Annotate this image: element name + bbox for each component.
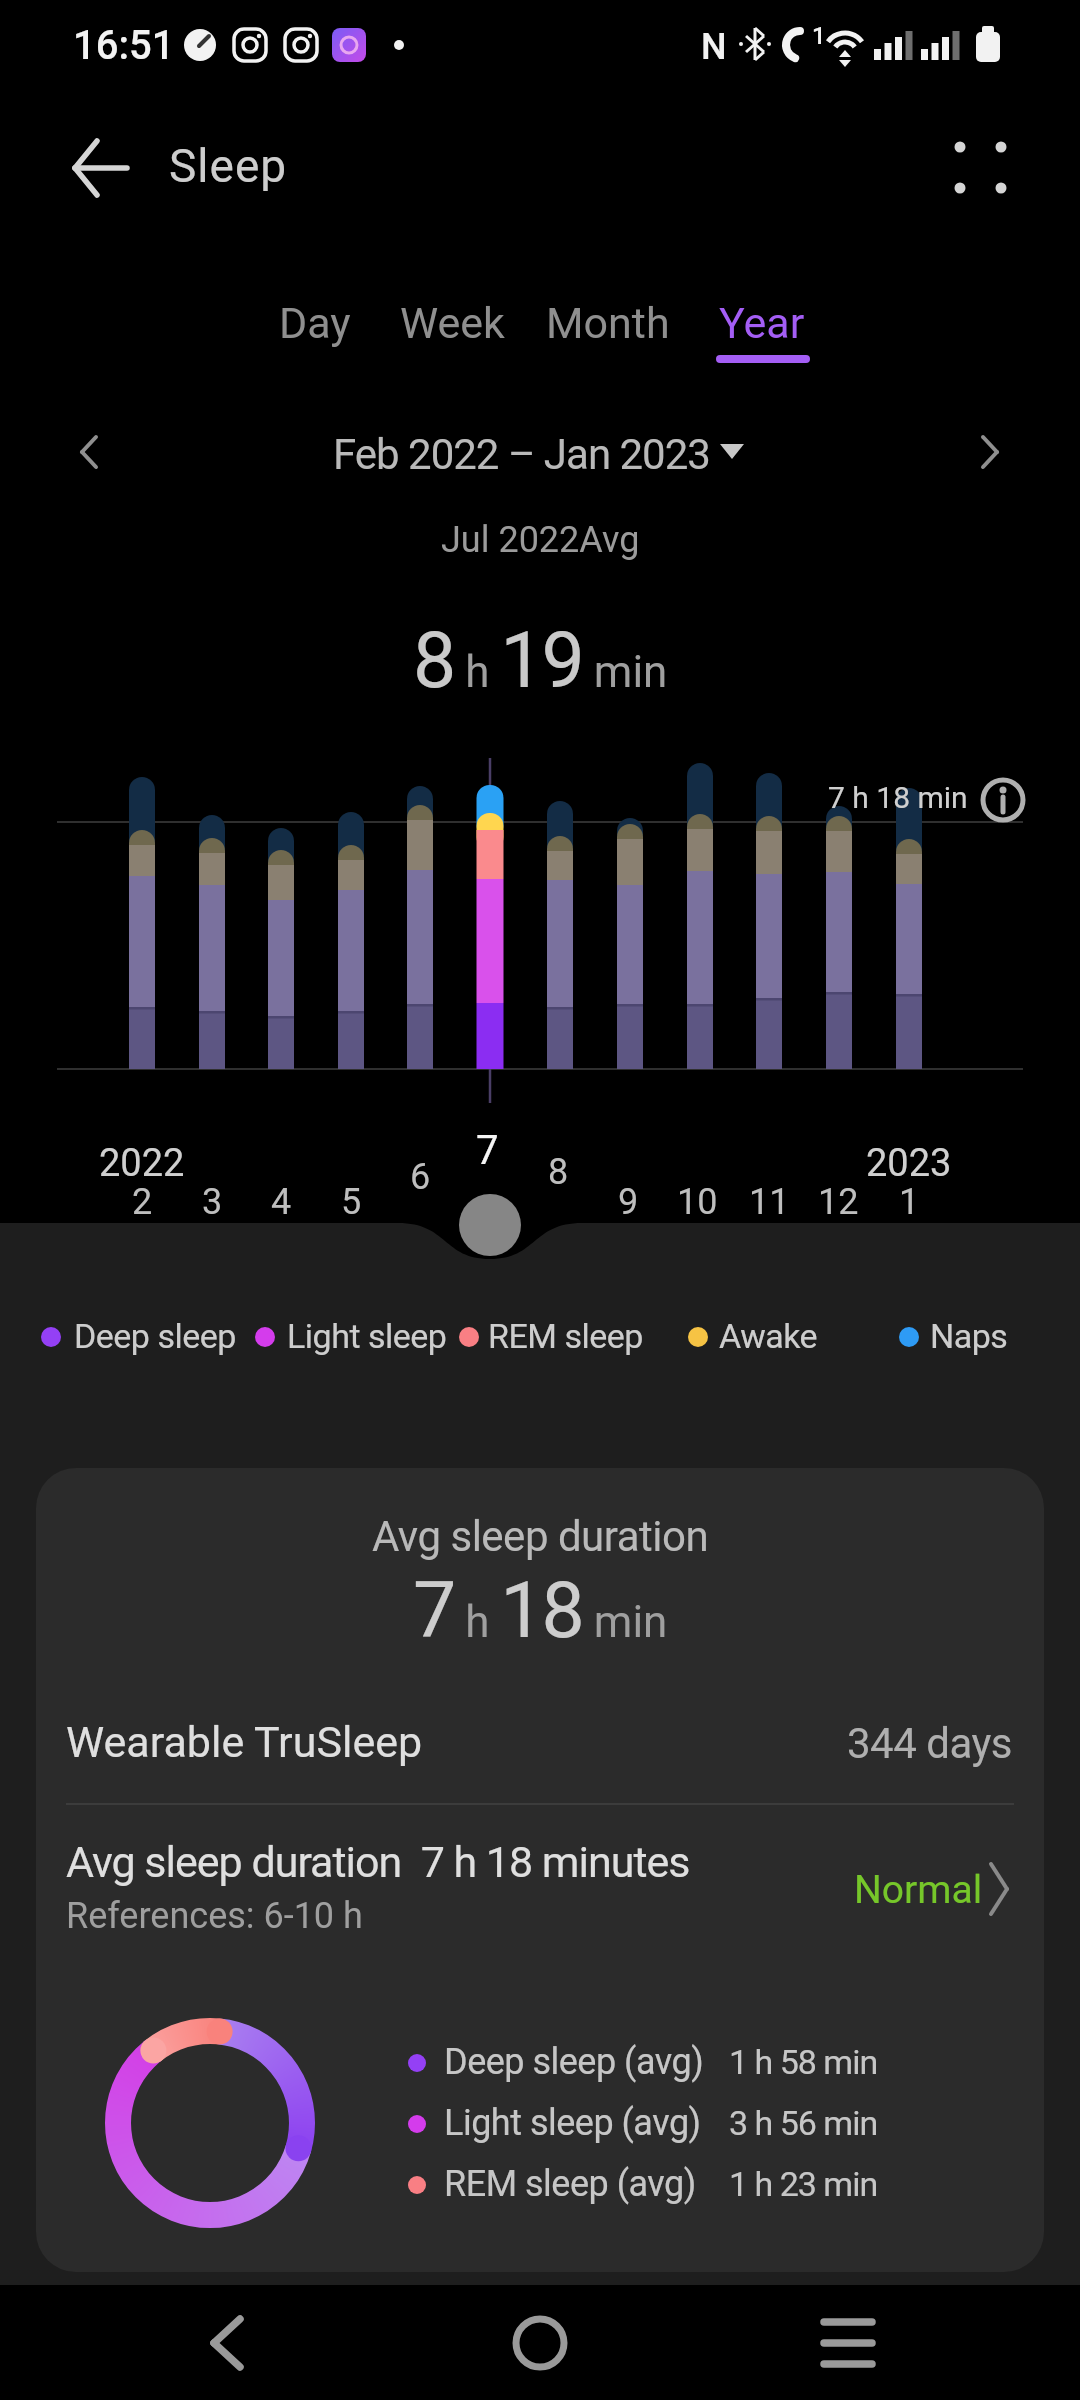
staticText: Naps <box>930 1316 1008 1356</box>
staticText: 7 h 18 min <box>828 780 968 815</box>
staticText: Feb 2022 – Jan 2023 <box>333 430 710 479</box>
staticText: Avg sleep duration <box>372 1512 709 1561</box>
button[interactable] <box>975 773 1030 828</box>
staticText: 1 <box>899 1181 920 1223</box>
staticText: 6 <box>410 1156 431 1198</box>
staticText: References: 6-10 h <box>66 1895 363 1937</box>
staticText: Year <box>719 298 805 348</box>
staticText: 7 h 18 min <box>413 1566 668 1656</box>
staticText: Jul 2022Avg <box>441 519 640 561</box>
staticText: REM sleep (avg) <box>444 2163 696 2205</box>
staticText: 5 <box>341 1181 362 1223</box>
staticText: 4 <box>271 1181 292 1223</box>
staticText: 12 <box>818 1181 859 1223</box>
staticText: Avg sleep duration 7 h 18 minutes <box>66 1837 690 1887</box>
button[interactable] <box>36 1815 1044 1945</box>
button[interactable] <box>790 2293 910 2393</box>
button[interactable] <box>536 280 676 365</box>
button[interactable] <box>40 405 135 500</box>
staticText: 16:51 <box>73 22 175 69</box>
button[interactable] <box>450 1184 530 1264</box>
staticText: 7 <box>476 1127 499 1174</box>
staticText: 1 h 58 min <box>729 2042 878 2082</box>
staticText: Normal <box>854 1867 983 1913</box>
button[interactable] <box>945 405 1040 500</box>
staticText: 344 days <box>847 1719 1013 1768</box>
button[interactable] <box>700 280 816 365</box>
staticText: Deep sleep <box>74 1316 236 1356</box>
staticText: Light sleep <box>287 1316 447 1356</box>
staticText: 8 <box>548 1151 569 1193</box>
staticText: Awake <box>719 1316 818 1356</box>
button[interactable] <box>480 2293 600 2393</box>
staticText: 11 <box>749 1181 790 1223</box>
button[interactable] <box>36 1700 1044 1790</box>
staticText: Day <box>279 298 351 348</box>
staticText: 3 <box>202 1181 223 1223</box>
staticText: 9 <box>618 1181 639 1223</box>
staticText: Wearable TruSleep <box>66 1717 423 1767</box>
staticText: 2023 <box>866 1141 952 1186</box>
staticText: N <box>701 26 727 68</box>
staticText: 10 <box>677 1181 718 1223</box>
staticText: REM sleep <box>488 1316 643 1356</box>
staticText: Light sleep (avg) <box>444 2102 701 2144</box>
staticText: 1 h 23 min <box>729 2164 878 2204</box>
staticText: 2022 <box>99 1141 185 1186</box>
staticText: Week <box>400 298 505 348</box>
button[interactable] <box>330 408 750 496</box>
staticText: 1 <box>812 22 826 50</box>
button[interactable] <box>930 115 1040 225</box>
button[interactable] <box>262 280 368 365</box>
staticText: 2 <box>132 1181 153 1223</box>
staticText: 3 h 56 min <box>729 2103 878 2143</box>
staticText: 8 h 19 min <box>413 616 668 706</box>
staticText: Sleep <box>169 139 288 193</box>
button[interactable] <box>50 120 150 220</box>
staticText: Deep sleep (avg) <box>444 2041 704 2083</box>
staticText: Month <box>546 298 670 348</box>
button[interactable] <box>390 280 510 365</box>
button[interactable] <box>168 2293 288 2393</box>
